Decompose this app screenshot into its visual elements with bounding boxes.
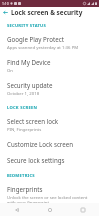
- button[interactable]: Recents: [66, 203, 99, 216]
- staticText: Find My Device: [7, 58, 51, 66]
- staticText: Security update: [7, 81, 53, 89]
- staticText: Secure lock settings: [7, 156, 65, 164]
- staticText: Unlock the screen or see locked content …: [7, 194, 92, 203]
- button[interactable]: Customize Lock screen: [0, 136, 99, 152]
- button[interactable]: Security update: [0, 77, 99, 100]
- button[interactable]: Home: [33, 203, 66, 216]
- button[interactable]: Google Play Protect: [0, 31, 99, 54]
- staticText: Apps scanned yesterday at 1:36 PM: [7, 44, 79, 50]
- button[interactable]: Fingerprints: [0, 181, 99, 203]
- staticText: Customize Lock screen: [7, 140, 74, 148]
- button[interactable]: Secure lock settings: [0, 152, 99, 168]
- staticText: SECURITY STATUS: [7, 23, 46, 29]
- staticText: BIOMETRICS: [7, 173, 35, 179]
- staticText: Lock screen & security: [11, 8, 83, 17]
- staticText: 1:10: [2, 1, 9, 6]
- button[interactable]: Find My Device: [0, 54, 99, 77]
- staticText: Fingerprints: [7, 185, 43, 193]
- staticText: LOCK SCREEN: [7, 105, 38, 111]
- staticText: October 1, 2018: [7, 90, 40, 96]
- button[interactable]: Back: [0, 203, 33, 216]
- button[interactable]: Select screen lock: [0, 113, 99, 136]
- staticText: Google Play Protect: [7, 35, 64, 43]
- staticText: PIN, Fingerprints: [7, 126, 42, 132]
- button[interactable]: Back: [0, 7, 11, 18]
- staticText: Select screen lock: [7, 117, 59, 125]
- staticText: On: [7, 67, 14, 73]
